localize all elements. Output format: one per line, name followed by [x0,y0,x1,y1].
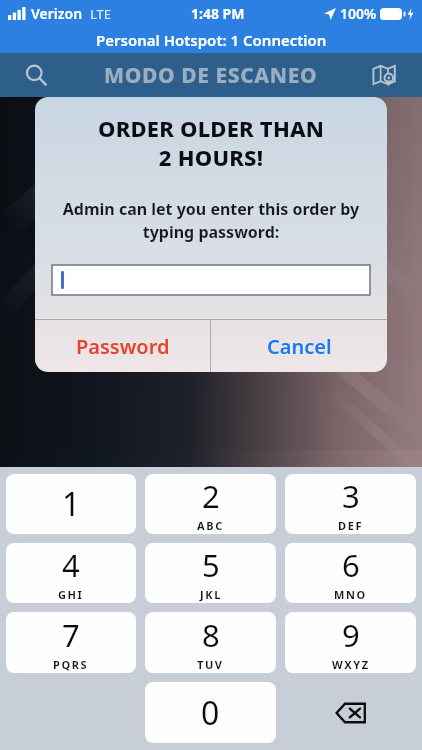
staticText: 1:48 PM [191,4,245,23]
staticText: 4 [62,544,80,586]
staticText: DEF [338,518,364,533]
button[interactable]: Search [18,57,54,93]
staticText: GHI [58,587,84,602]
staticText: MODO DE ESCANEO [104,61,318,90]
button[interactable]: Map [366,57,402,93]
button[interactable]: 1 [6,474,136,534]
button[interactable] [52,265,370,295]
staticText: Cancel [267,333,332,360]
staticText: 8 [202,614,220,656]
button[interactable]: 3 [285,474,416,534]
button[interactable]: 8 [145,612,276,673]
staticText: Admin can let you enter this order by ty… [51,198,371,243]
staticText: 7 [62,614,80,656]
staticText: LTE [90,5,112,23]
button[interactable]: Password [35,320,210,372]
staticText: 1 [62,482,81,526]
staticText: TUV [197,657,224,672]
staticText: 100% [340,4,377,23]
staticText: 9 [342,614,360,656]
staticText: MNO [334,587,367,602]
staticText: Verizon [31,4,83,23]
staticText: WXYZ [332,657,370,672]
button[interactable]: 4 [6,543,136,603]
staticText: ORDER OLDER THAN 2 HOURS! [49,113,373,172]
button[interactable]: 9 [285,612,416,673]
button[interactable]: 5 [145,543,276,603]
staticText: PQRS [53,657,89,672]
staticText: Personal Hotspot: 1 Connection [96,30,327,50]
staticText: 2 [202,475,220,517]
button[interactable]: 2 [145,474,276,534]
staticText: JKL [200,587,222,602]
staticText: 5 [202,544,220,586]
staticText: ABC [197,518,224,533]
staticText: 3 [342,475,360,517]
button[interactable]: 6 [285,543,416,603]
button[interactable]: Cancel [211,320,387,372]
staticText: Password [76,333,170,360]
button[interactable]: Delete [285,682,416,743]
button[interactable]: 0 [145,682,276,743]
staticText: 6 [342,544,360,586]
staticText: 0 [201,691,220,735]
button[interactable]: 7 [6,612,136,673]
